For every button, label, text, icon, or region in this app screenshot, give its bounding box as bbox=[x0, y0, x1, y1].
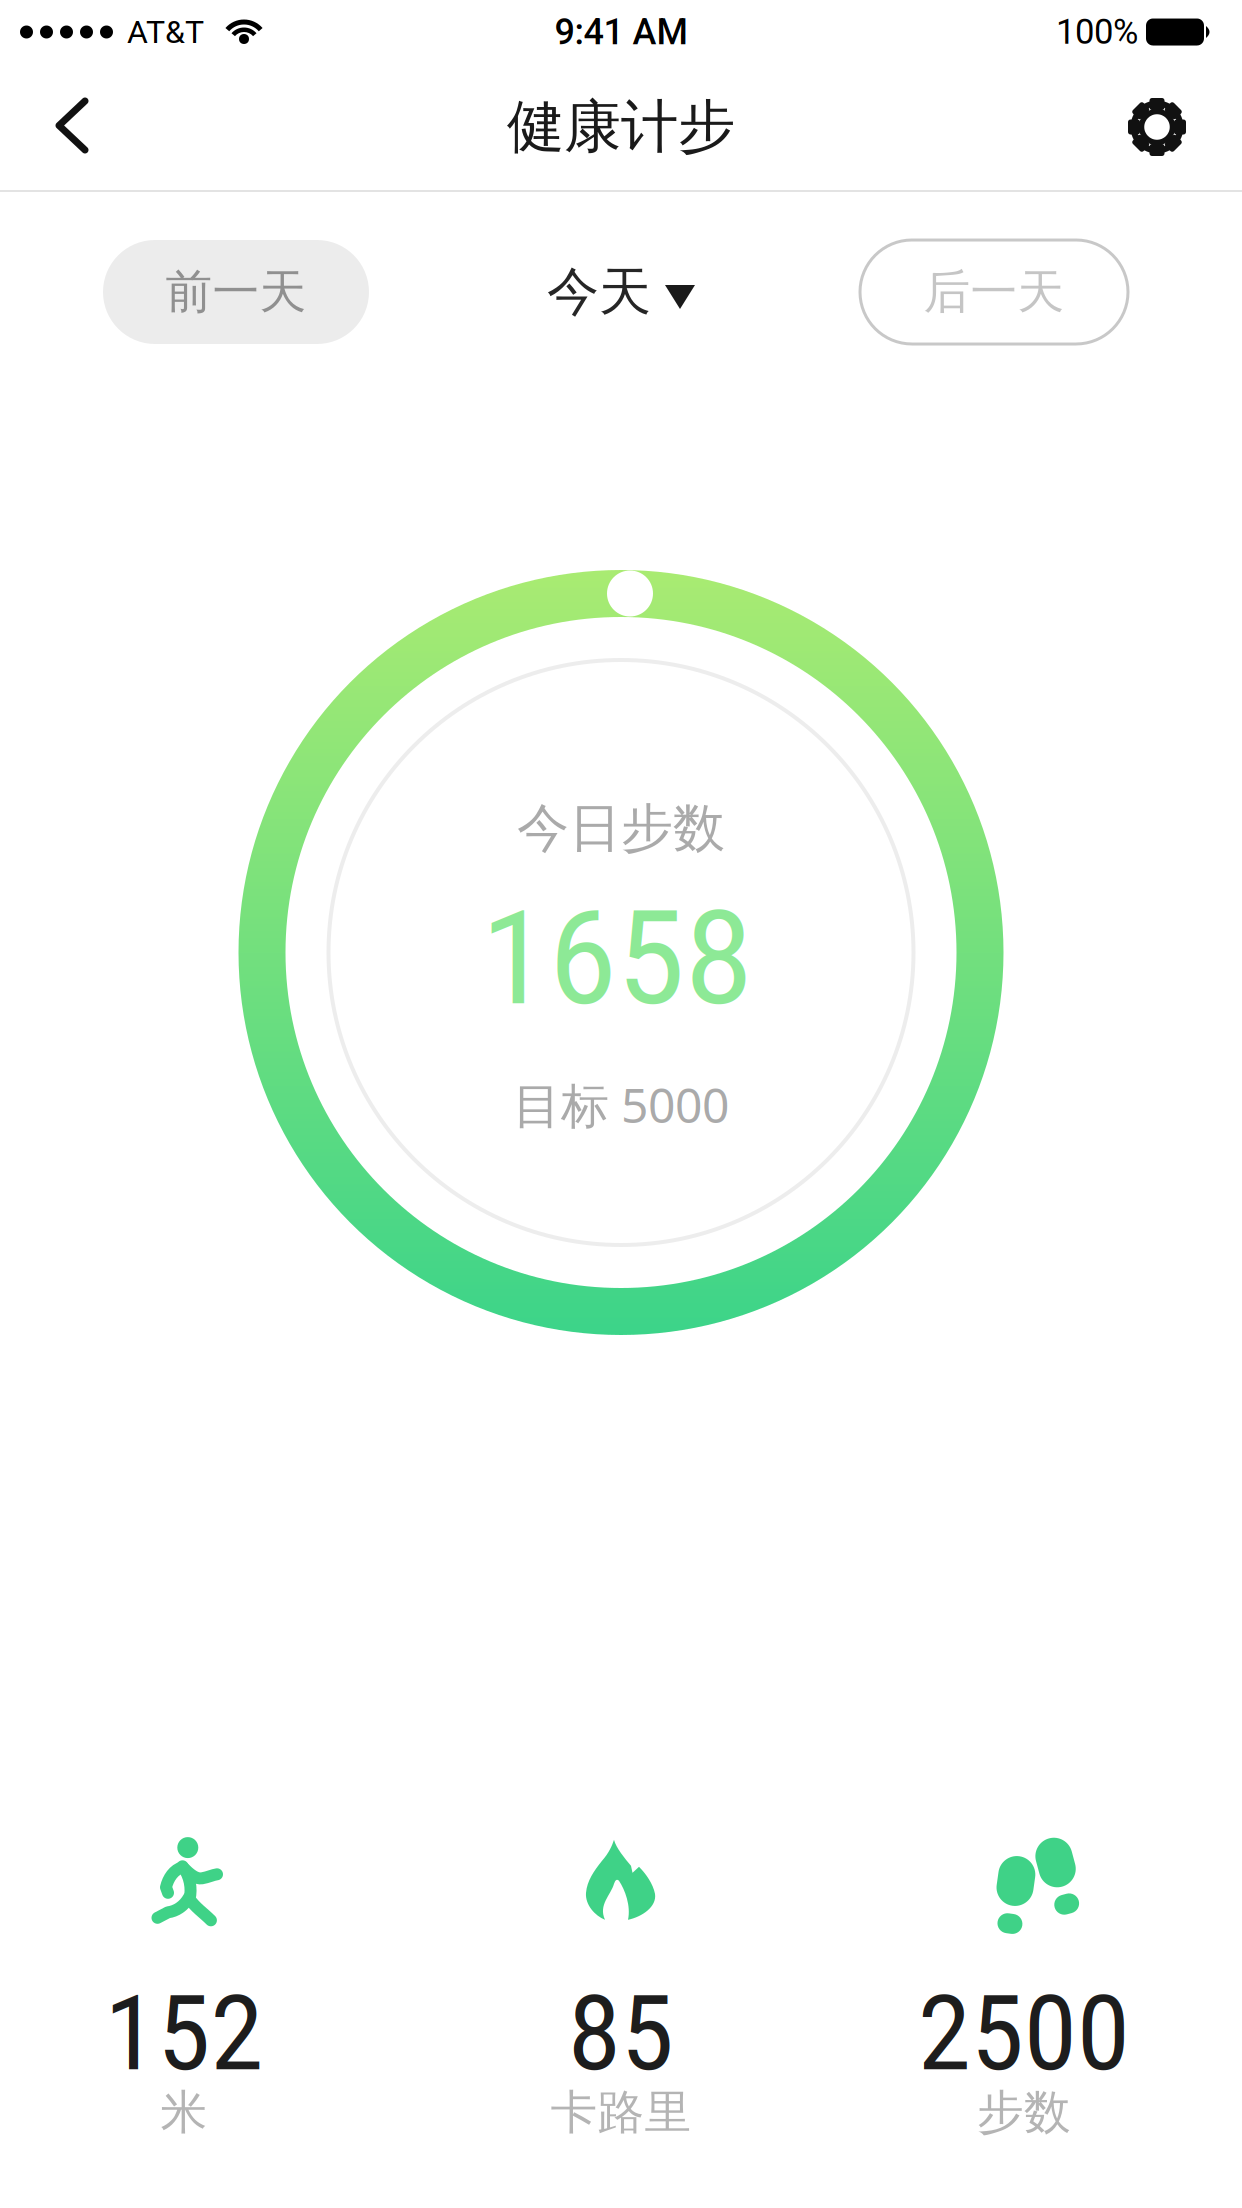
staticText: 1658 bbox=[481, 882, 753, 1035]
staticText: 今天 bbox=[547, 260, 651, 324]
staticText: 后一天 bbox=[923, 263, 1064, 321]
staticText: 健康计步 bbox=[507, 92, 735, 162]
button[interactable]: Settings bbox=[1128, 80, 1242, 174]
staticText: 步数 bbox=[977, 2084, 1071, 2141]
staticText: 目标 5000 bbox=[513, 1073, 729, 1136]
staticText: AT&T bbox=[127, 13, 204, 51]
staticText: 今日步数 bbox=[517, 797, 725, 860]
staticText: 米 bbox=[160, 2084, 207, 2141]
staticText: 9:41 AM bbox=[554, 11, 687, 53]
button[interactable]: 后一天 bbox=[860, 240, 1128, 344]
staticText: 85 bbox=[568, 1973, 674, 2095]
staticText: 卡路里 bbox=[550, 2084, 691, 2141]
staticText: 152 bbox=[104, 1973, 263, 2095]
staticText: 2500 bbox=[918, 1973, 1130, 2095]
button[interactable]: Back bbox=[0, 77, 92, 177]
button[interactable]: 前一天 bbox=[103, 240, 369, 344]
button[interactable]: 选择日期 bbox=[547, 260, 695, 324]
staticText: 前一天 bbox=[165, 263, 306, 321]
staticText: 100% bbox=[1056, 12, 1138, 52]
